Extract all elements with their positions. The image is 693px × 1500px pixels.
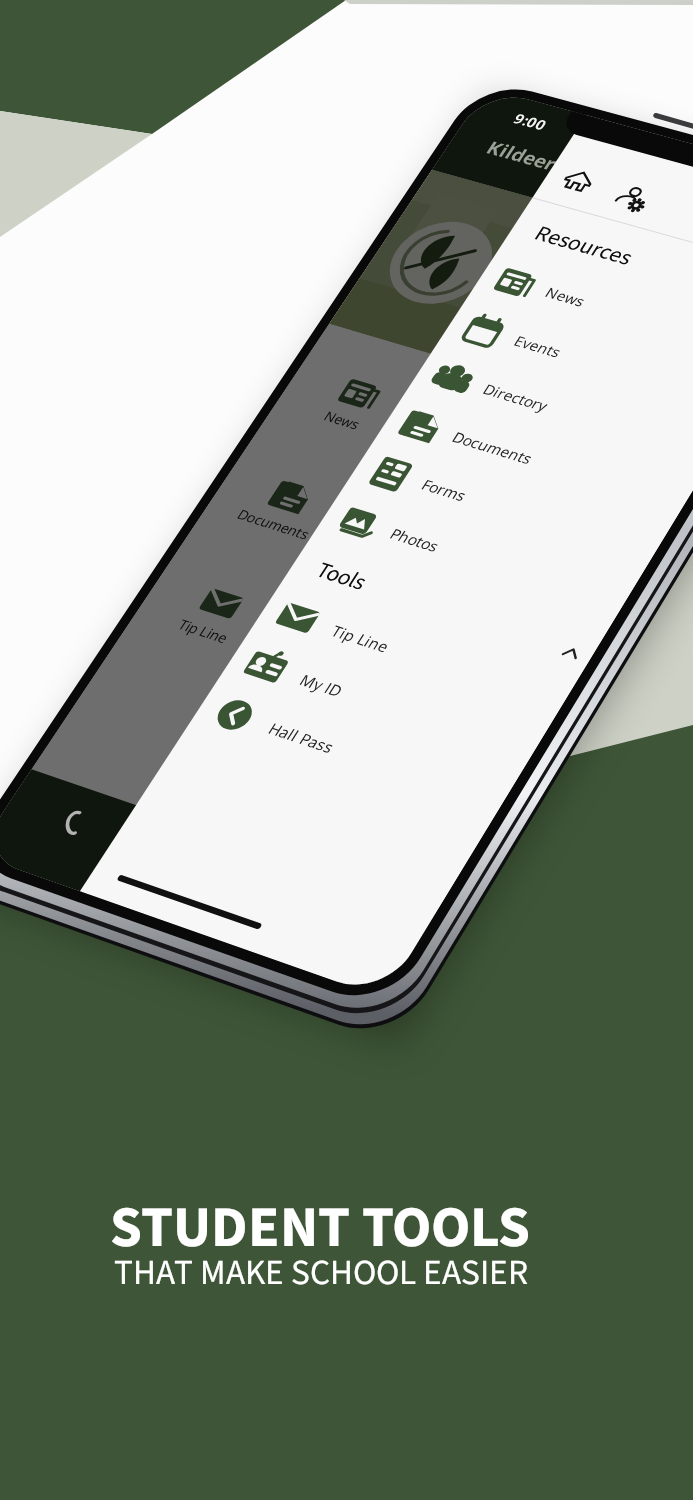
button[interactable]: Student tools promotional screen bbox=[0, 0, 693, 1500]
